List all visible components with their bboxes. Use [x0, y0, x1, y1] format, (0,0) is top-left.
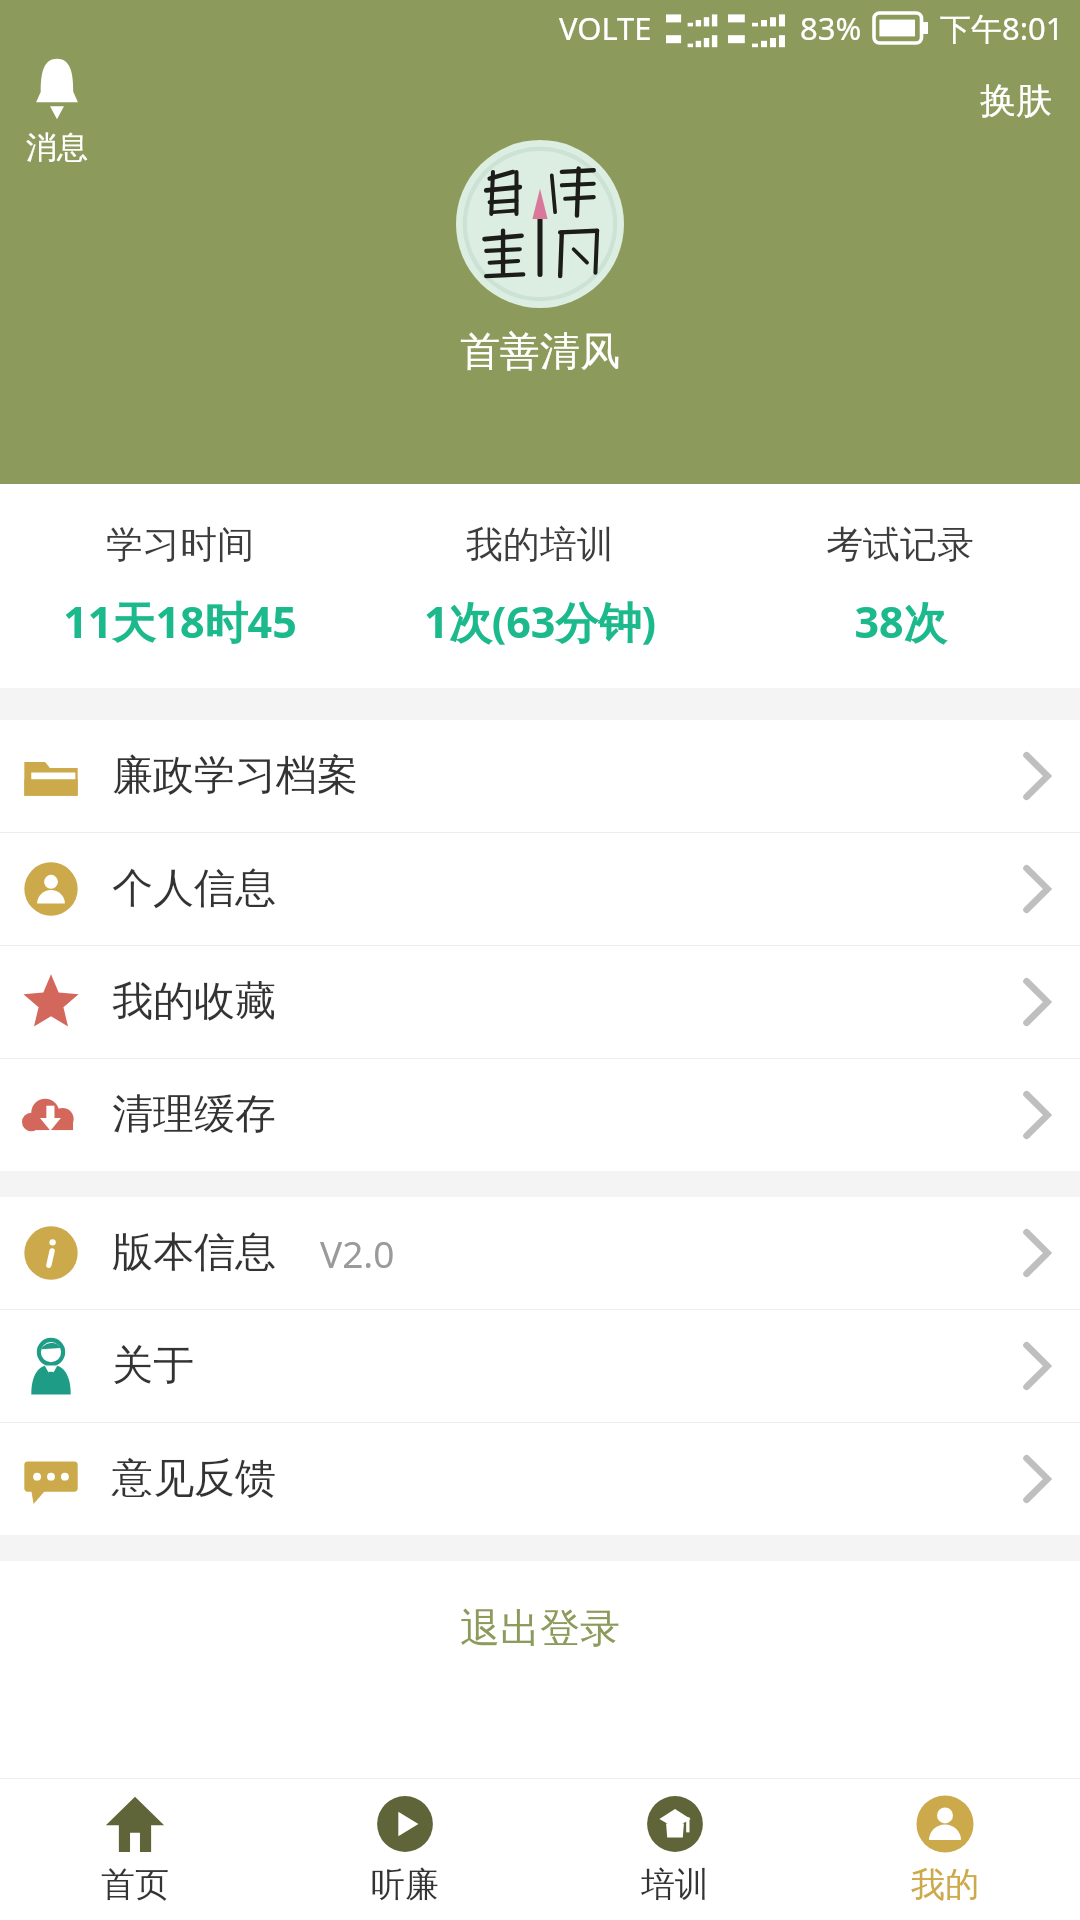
button[interactable]: 我的收藏: [0, 946, 1080, 1058]
staticText: 消息: [26, 128, 88, 167]
button[interactable]: 消息: [16, 52, 98, 171]
button[interactable]: 换肤: [952, 68, 1080, 133]
staticText: 廉政学习档案: [112, 750, 358, 802]
staticText: 清理缓存: [112, 1089, 276, 1141]
staticText: 考试记录: [826, 521, 974, 568]
button[interactable]: 廉政学习档案: [0, 720, 1080, 832]
staticText: 83%: [800, 7, 862, 49]
staticText: 我的收藏: [112, 976, 276, 1028]
staticText: 听廉: [371, 1863, 439, 1906]
button[interactable]: 我的培训: [360, 484, 720, 688]
staticText: 首页: [101, 1863, 169, 1906]
staticText: VOLTE: [559, 7, 652, 49]
staticText: 11天18时45: [63, 592, 297, 651]
button[interactable]: 首页: [0, 1779, 270, 1920]
button[interactable]: 退出登录: [420, 1597, 660, 1659]
staticText: 我的培训: [466, 521, 614, 568]
staticText: 38次: [854, 592, 947, 651]
staticText: 退出登录: [460, 1603, 620, 1653]
button[interactable]: 个人信息: [0, 833, 1080, 945]
button[interactable]: 意见反馈: [0, 1423, 1080, 1535]
button[interactable]: 版本信息: [0, 1197, 1080, 1309]
staticText: 意见反馈: [112, 1453, 276, 1505]
staticText: 版本信息: [112, 1227, 276, 1279]
button[interactable]: 首善清风: [456, 140, 624, 308]
button[interactable]: 清理缓存: [0, 1059, 1080, 1171]
staticText: V2.0: [320, 1228, 395, 1278]
staticText: 1次(63分钟): [424, 592, 656, 651]
staticText: 我的: [911, 1863, 979, 1906]
button[interactable]: 关于: [0, 1310, 1080, 1422]
button[interactable]: 听廉: [270, 1779, 540, 1920]
staticText: 培训: [641, 1863, 709, 1906]
staticText: 首善清风: [460, 326, 620, 376]
button[interactable]: 培训: [540, 1779, 810, 1920]
staticText: 下午8:01: [940, 7, 1064, 49]
staticText: 关于: [112, 1340, 194, 1392]
button[interactable]: 考试记录: [720, 484, 1080, 688]
staticText: 个人信息: [112, 863, 276, 915]
button[interactable]: 我的: [810, 1779, 1080, 1920]
staticText: 换肤: [980, 78, 1052, 123]
staticText: 学习时间: [106, 521, 254, 568]
button[interactable]: 学习时间: [0, 484, 360, 688]
